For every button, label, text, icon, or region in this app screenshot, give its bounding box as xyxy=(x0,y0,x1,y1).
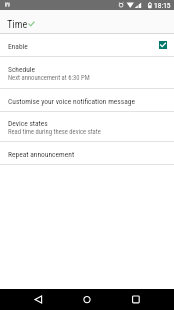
button[interactable]: Back xyxy=(0,289,58,310)
staticText: Repeat announcement xyxy=(8,150,75,159)
staticText: 18:15 xyxy=(154,1,171,10)
button[interactable]: Schedule xyxy=(0,57,174,88)
button[interactable]: Home xyxy=(58,289,107,310)
staticText: Device states xyxy=(8,119,48,128)
staticText: Read time during these device state xyxy=(8,128,101,136)
button[interactable]: Enable xyxy=(0,34,174,56)
staticText: Customise your voice notification messag… xyxy=(8,97,135,106)
button[interactable]: Recent apps xyxy=(107,289,174,310)
staticText: Next announcement at 6:30 PM xyxy=(8,74,90,82)
staticText: Schedule xyxy=(8,65,36,74)
other: Enable xyxy=(159,41,167,49)
button[interactable]: Device states xyxy=(0,112,174,141)
staticText: Enable xyxy=(8,42,28,51)
staticText: Time xyxy=(7,18,28,30)
button[interactable]: Customise your voice notification messag… xyxy=(0,89,174,111)
button[interactable]: Repeat announcement xyxy=(0,142,174,164)
